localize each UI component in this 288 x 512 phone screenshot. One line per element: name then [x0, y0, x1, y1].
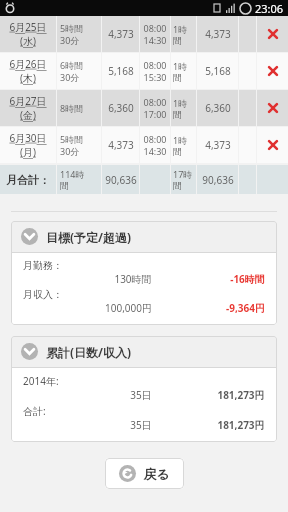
staticText: -9,364円 — [226, 301, 265, 315]
staticText: 間 — [173, 180, 182, 191]
staticText: 08:00 — [143, 96, 167, 108]
staticText: 35日 — [130, 388, 152, 402]
button[interactable]: 戻る — [105, 458, 184, 489]
staticText: 30分 — [60, 145, 80, 157]
staticText: 6,360 — [108, 101, 134, 115]
staticText: 間 — [173, 109, 182, 120]
staticText: 月合計： — [6, 173, 50, 187]
staticText: 181,273円 — [217, 388, 265, 402]
staticText: 23:06 — [255, 1, 284, 16]
staticText: 30分 — [60, 71, 80, 83]
staticText: 5時間 — [60, 133, 84, 145]
staticText: 1時 — [173, 60, 188, 72]
staticText: 累計(日数/収入) — [46, 344, 132, 360]
staticText: 間 — [173, 72, 182, 83]
staticText: 間 — [173, 146, 182, 157]
button[interactable]: Delete row — [257, 16, 288, 52]
staticText: 14:30 — [143, 34, 167, 46]
staticText: 1時 — [173, 134, 188, 146]
staticText: 2014年: — [23, 374, 265, 388]
staticText: 間 — [60, 180, 69, 191]
staticText: -16時間 — [230, 272, 265, 286]
staticText: 月収入： — [23, 288, 265, 301]
staticText: 14:30 — [143, 145, 167, 157]
staticText: 6月25日 — [9, 20, 47, 34]
staticText: 6月26日 — [9, 57, 47, 71]
staticText: 181,273円 — [217, 418, 265, 432]
staticText: 4,373 — [205, 27, 231, 41]
staticText: 130時間 — [114, 272, 152, 286]
staticText: 100,000円 — [105, 301, 152, 315]
staticText: 30分 — [60, 34, 80, 46]
staticText: 35日 — [130, 418, 152, 432]
button[interactable]: 累計(日数/収入) — [21, 336, 277, 367]
staticText: (水) — [20, 34, 36, 48]
button[interactable]: Delete row — [257, 127, 288, 163]
staticText: 6月30日 — [9, 131, 47, 145]
staticText: 8時間 — [60, 102, 84, 114]
staticText: 17時 — [173, 168, 193, 180]
staticText: 17:00 — [143, 108, 167, 120]
staticText: 90,636 — [202, 173, 234, 187]
staticText: 月勤務： — [23, 259, 265, 272]
staticText: 4,373 — [108, 27, 134, 41]
staticText: 戻る — [143, 466, 170, 482]
staticText: 4,373 — [205, 138, 231, 152]
staticText: (木) — [20, 71, 36, 85]
staticText: 5,168 — [108, 64, 134, 78]
staticText: 6月27日 — [9, 94, 47, 108]
staticText: 08:00 — [143, 22, 167, 34]
staticText: (金) — [20, 108, 36, 122]
staticText: 6,360 — [205, 101, 231, 115]
staticText: 114時 — [60, 168, 85, 180]
staticText: 5時間 — [60, 22, 84, 34]
staticText: 15:30 — [143, 71, 167, 83]
staticText: 1時 — [173, 23, 188, 35]
button[interactable]: Delete row — [257, 90, 288, 126]
staticText: 90,636 — [105, 173, 137, 187]
staticText: 08:00 — [143, 133, 167, 145]
staticText: 1時 — [173, 97, 188, 109]
staticText: 合計: — [23, 404, 265, 418]
button[interactable]: Delete row — [257, 53, 288, 89]
staticText: 08:00 — [143, 59, 167, 71]
staticText: 5,168 — [205, 64, 231, 78]
staticText: 間 — [173, 35, 182, 46]
button[interactable]: 目標(予定/超過) — [21, 221, 277, 252]
staticText: (月) — [20, 145, 36, 159]
staticText: 6時間 — [60, 59, 84, 71]
staticText: 4,373 — [108, 138, 134, 152]
staticText: 目標(予定/超過) — [46, 229, 132, 245]
